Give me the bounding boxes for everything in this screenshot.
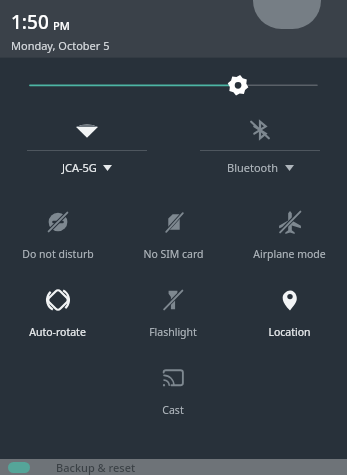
- staticText: Cast: [162, 403, 184, 417]
- staticText: Flashlight: [149, 325, 197, 339]
- button[interactable]: Airplane mode: [231, 201, 347, 279]
- button[interactable]: Bluetooth: [173, 111, 347, 187]
- button[interactable]: User profile: [253, 0, 321, 29]
- staticText: No SIM card: [143, 247, 204, 261]
- staticText: PM: [53, 18, 70, 33]
- button[interactable]: Do not disturb: [0, 201, 115, 279]
- staticText: Location: [268, 325, 311, 339]
- staticText: Airplane mode: [253, 247, 326, 261]
- staticText: Auto-rotate: [29, 325, 86, 339]
- staticText: Bluetooth: [227, 160, 279, 175]
- button[interactable]: Auto-rotate: [0, 279, 115, 357]
- button[interactable]: Cast: [115, 357, 231, 435]
- button[interactable]: Flashlight: [115, 279, 231, 357]
- button[interactable]: Location: [231, 279, 347, 357]
- staticText: Monday, October 5: [11, 38, 110, 53]
- button[interactable]: JCA-5G: [0, 111, 173, 187]
- staticText: 1:50: [11, 9, 49, 35]
- button[interactable]: No SIM card: [115, 201, 231, 279]
- staticText: Do not disturb: [22, 247, 94, 261]
- staticText: Backup & reset: [56, 460, 136, 475]
- button[interactable]: Brightness: [0, 58, 347, 102]
- staticText: JCA-5G: [62, 160, 97, 175]
